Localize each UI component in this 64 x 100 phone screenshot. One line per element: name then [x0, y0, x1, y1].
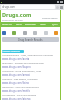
staticText: www.drugs.com/atorva: [2, 97, 31, 100]
button[interactable]: Lisinopril - Side effects, Warnings: [2, 78, 60, 86]
button[interactable]: Sign in: [44, 31, 48, 35]
staticText: Amoxicillin - Drug Information, Uses: [2, 70, 42, 73]
staticText: Drug Search Results: [18, 38, 43, 42]
staticText: Drugs.com: [2, 11, 32, 18]
button[interactable]: Pill ID: [13, 22, 24, 27]
staticText: drugs.com: [2, 5, 16, 9]
staticText: Metformin - Uses and Interactions: [2, 86, 39, 89]
staticText: Ibuprofen - Dosage and administration: [2, 62, 45, 65]
staticText: Custom Search: [42, 17, 58, 20]
button[interactable]: Related searches: [2, 50, 24, 53]
staticText: www.drugs.com/ibupro: [2, 65, 31, 69]
staticText: Lisinopril - Side effects, Warnings: [2, 78, 38, 81]
staticText: Atorvastatin - Facts and Dosage: [2, 94, 37, 97]
button[interactable]: Drug information: [2, 31, 6, 35]
staticText: Pill ID: [16, 23, 22, 26]
button[interactable]: Support: [54, 31, 58, 35]
staticText: Know more. Be sure.: [2, 19, 24, 22]
button[interactable]: Menu: [60, 6, 63, 9]
staticText: Drugs A-Z: [2, 23, 12, 26]
button[interactable]: News: [37, 22, 48, 27]
button[interactable]: Q & A: [49, 22, 60, 27]
staticText: Related searches: [2, 50, 20, 53]
staticText: www.drugs.com/metfo: [2, 89, 30, 93]
button[interactable]: Interactions: [25, 22, 36, 27]
staticText: Acetaminophen - Uses, Side Effects & War…: [2, 54, 53, 57]
button[interactable]: Drugs A-Z: [1, 22, 12, 27]
staticText: Interactions: [25, 23, 36, 26]
button[interactable]: Interactions checker: [12, 31, 16, 35]
staticText: Q & A: [52, 23, 58, 26]
staticText: www.drugs.com/lisino: [2, 81, 30, 85]
button[interactable]: Ibuprofen - Dosage and administration: [2, 62, 60, 70]
button[interactable]: Atorvastatin - Facts and Dosage: [2, 94, 60, 100]
staticText: News: [40, 23, 46, 26]
button[interactable]: drugs.com: [1, 5, 55, 9]
button[interactable]: Pill identifier: [23, 31, 27, 35]
button[interactable]: News: [33, 31, 37, 35]
button[interactable]: Tabs: [56, 6, 59, 9]
button[interactable]: Drug Search Results: [2, 37, 59, 42]
staticText: www.drugs.com/aceta: [2, 57, 30, 61]
button[interactable]: Metformin - Uses and Interactions: [2, 86, 60, 94]
button[interactable]: Acetaminophen - Uses, Side Effects & War…: [2, 54, 60, 62]
button[interactable]: Amoxicillin - Drug Information, Uses: [2, 70, 60, 78]
staticText: www.drugs.com/amoxi: [2, 73, 31, 77]
